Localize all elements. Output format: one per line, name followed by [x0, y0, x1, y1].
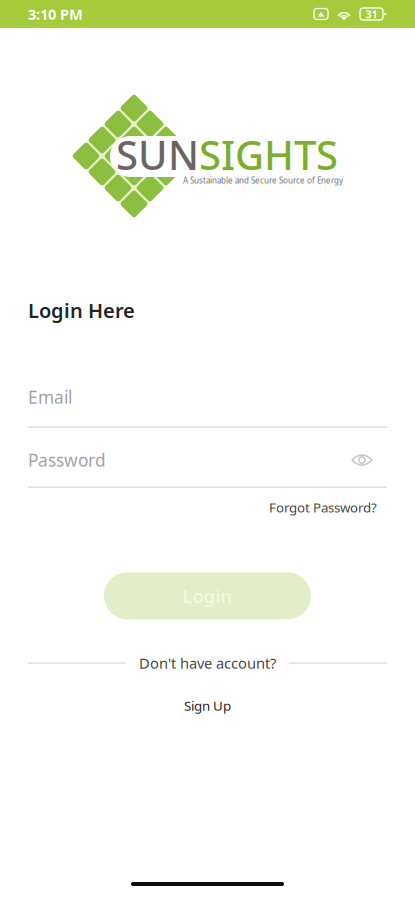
button[interactable]: Show password: [351, 450, 387, 471]
staticText: Login Here: [28, 297, 135, 324]
button[interactable]: Login: [104, 572, 311, 619]
staticText: 31: [365, 7, 377, 21]
button[interactable]: Sign Up: [28, 697, 387, 714]
button[interactable]: Forgot Password?: [269, 499, 387, 516]
staticText: SUN: [116, 128, 199, 181]
staticText: Email: [28, 386, 72, 409]
staticText: Sign Up: [184, 697, 231, 714]
staticText: Password: [28, 449, 106, 472]
staticText: SIGHTS: [199, 128, 338, 181]
staticText: Don't have account?: [139, 653, 276, 673]
staticText: 3:10 PM: [28, 4, 83, 24]
staticText: Login: [182, 583, 232, 608]
staticText: Forgot Password?: [269, 499, 377, 516]
staticText: A Sustainable and Secure Source of Energ…: [183, 175, 343, 186]
